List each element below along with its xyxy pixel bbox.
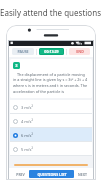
button[interactable]: NEXT (74, 168, 91, 180)
staticText: The displacement of a particle moving in… (13, 72, 89, 95)
button[interactable]: PREV (11, 168, 29, 180)
staticText: 3 (15, 63, 18, 68)
staticText: PREV (16, 172, 25, 177)
button[interactable]: END (69, 48, 90, 55)
button[interactable]: 5 m/s² (10, 142, 92, 156)
button[interactable]: QUESTIONS LIST (29, 170, 74, 178)
staticText: Easily attend the questions (0, 7, 101, 18)
staticText: 4 m/s² (21, 119, 33, 124)
button[interactable]: 4 m/s² (10, 114, 92, 128)
button[interactable]: PAUSE (12, 48, 34, 55)
staticText: PAUSE (17, 49, 29, 54)
staticText: QUESTIONS LIST (37, 172, 67, 177)
button[interactable]: 3 m/s² (10, 100, 92, 114)
staticText: END (76, 49, 84, 54)
staticText: 3 m/s² (21, 105, 33, 110)
button[interactable]: 6 m/s² (10, 128, 92, 142)
staticText: NEXT (78, 172, 87, 177)
staticText: 5 m/s² (21, 147, 33, 152)
staticText: 6 m/s² (21, 133, 33, 138)
staticText: 00:13:29 (44, 49, 59, 54)
button[interactable]: 00:13:29 (39, 48, 64, 55)
button[interactable]: Question number (13, 62, 20, 69)
